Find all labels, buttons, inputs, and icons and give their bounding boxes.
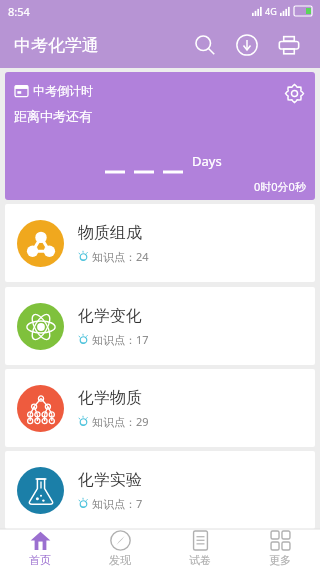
- staticText: 发现: [109, 553, 131, 567]
- button[interactable]: 化学物质: [5, 369, 315, 447]
- staticText: 物质组成: [78, 223, 142, 243]
- staticText: 化学实验: [78, 470, 142, 490]
- button[interactable]: 试卷: [160, 529, 240, 568]
- button[interactable]: Search: [184, 24, 226, 66]
- staticText: 知识点：17: [92, 332, 149, 347]
- button[interactable]: Print: [268, 24, 310, 66]
- staticText: 知识点：24: [92, 249, 149, 264]
- button[interactable]: 化学变化: [5, 287, 315, 365]
- staticText: 知识点：7: [92, 496, 143, 511]
- staticText: 试卷: [189, 553, 211, 567]
- button[interactable]: 物质组成: [5, 204, 315, 282]
- staticText: 0时0分0秒: [254, 179, 306, 194]
- staticText: 化学变化: [78, 306, 142, 326]
- button[interactable]: 中考倒计时: [5, 72, 315, 200]
- button[interactable]: Settings: [279, 78, 309, 108]
- staticText: 首页: [29, 553, 51, 567]
- button[interactable]: 化学实验: [5, 451, 315, 529]
- staticText: 4G: [265, 5, 277, 17]
- button[interactable]: Download: [226, 24, 268, 66]
- button[interactable]: 更多: [240, 529, 320, 568]
- staticText: 中考化学通: [14, 35, 99, 56]
- staticText: 8:54: [8, 4, 30, 19]
- staticText: 更多: [269, 553, 291, 567]
- staticText: Days: [192, 152, 222, 170]
- staticText: 距离中考还有: [14, 108, 92, 124]
- button[interactable]: 首页: [0, 529, 80, 568]
- button[interactable]: 发现: [80, 529, 160, 568]
- staticText: 知识点：29: [92, 414, 149, 429]
- staticText: 化学物质: [78, 388, 142, 408]
- staticText: 中考倒计时: [33, 83, 93, 98]
